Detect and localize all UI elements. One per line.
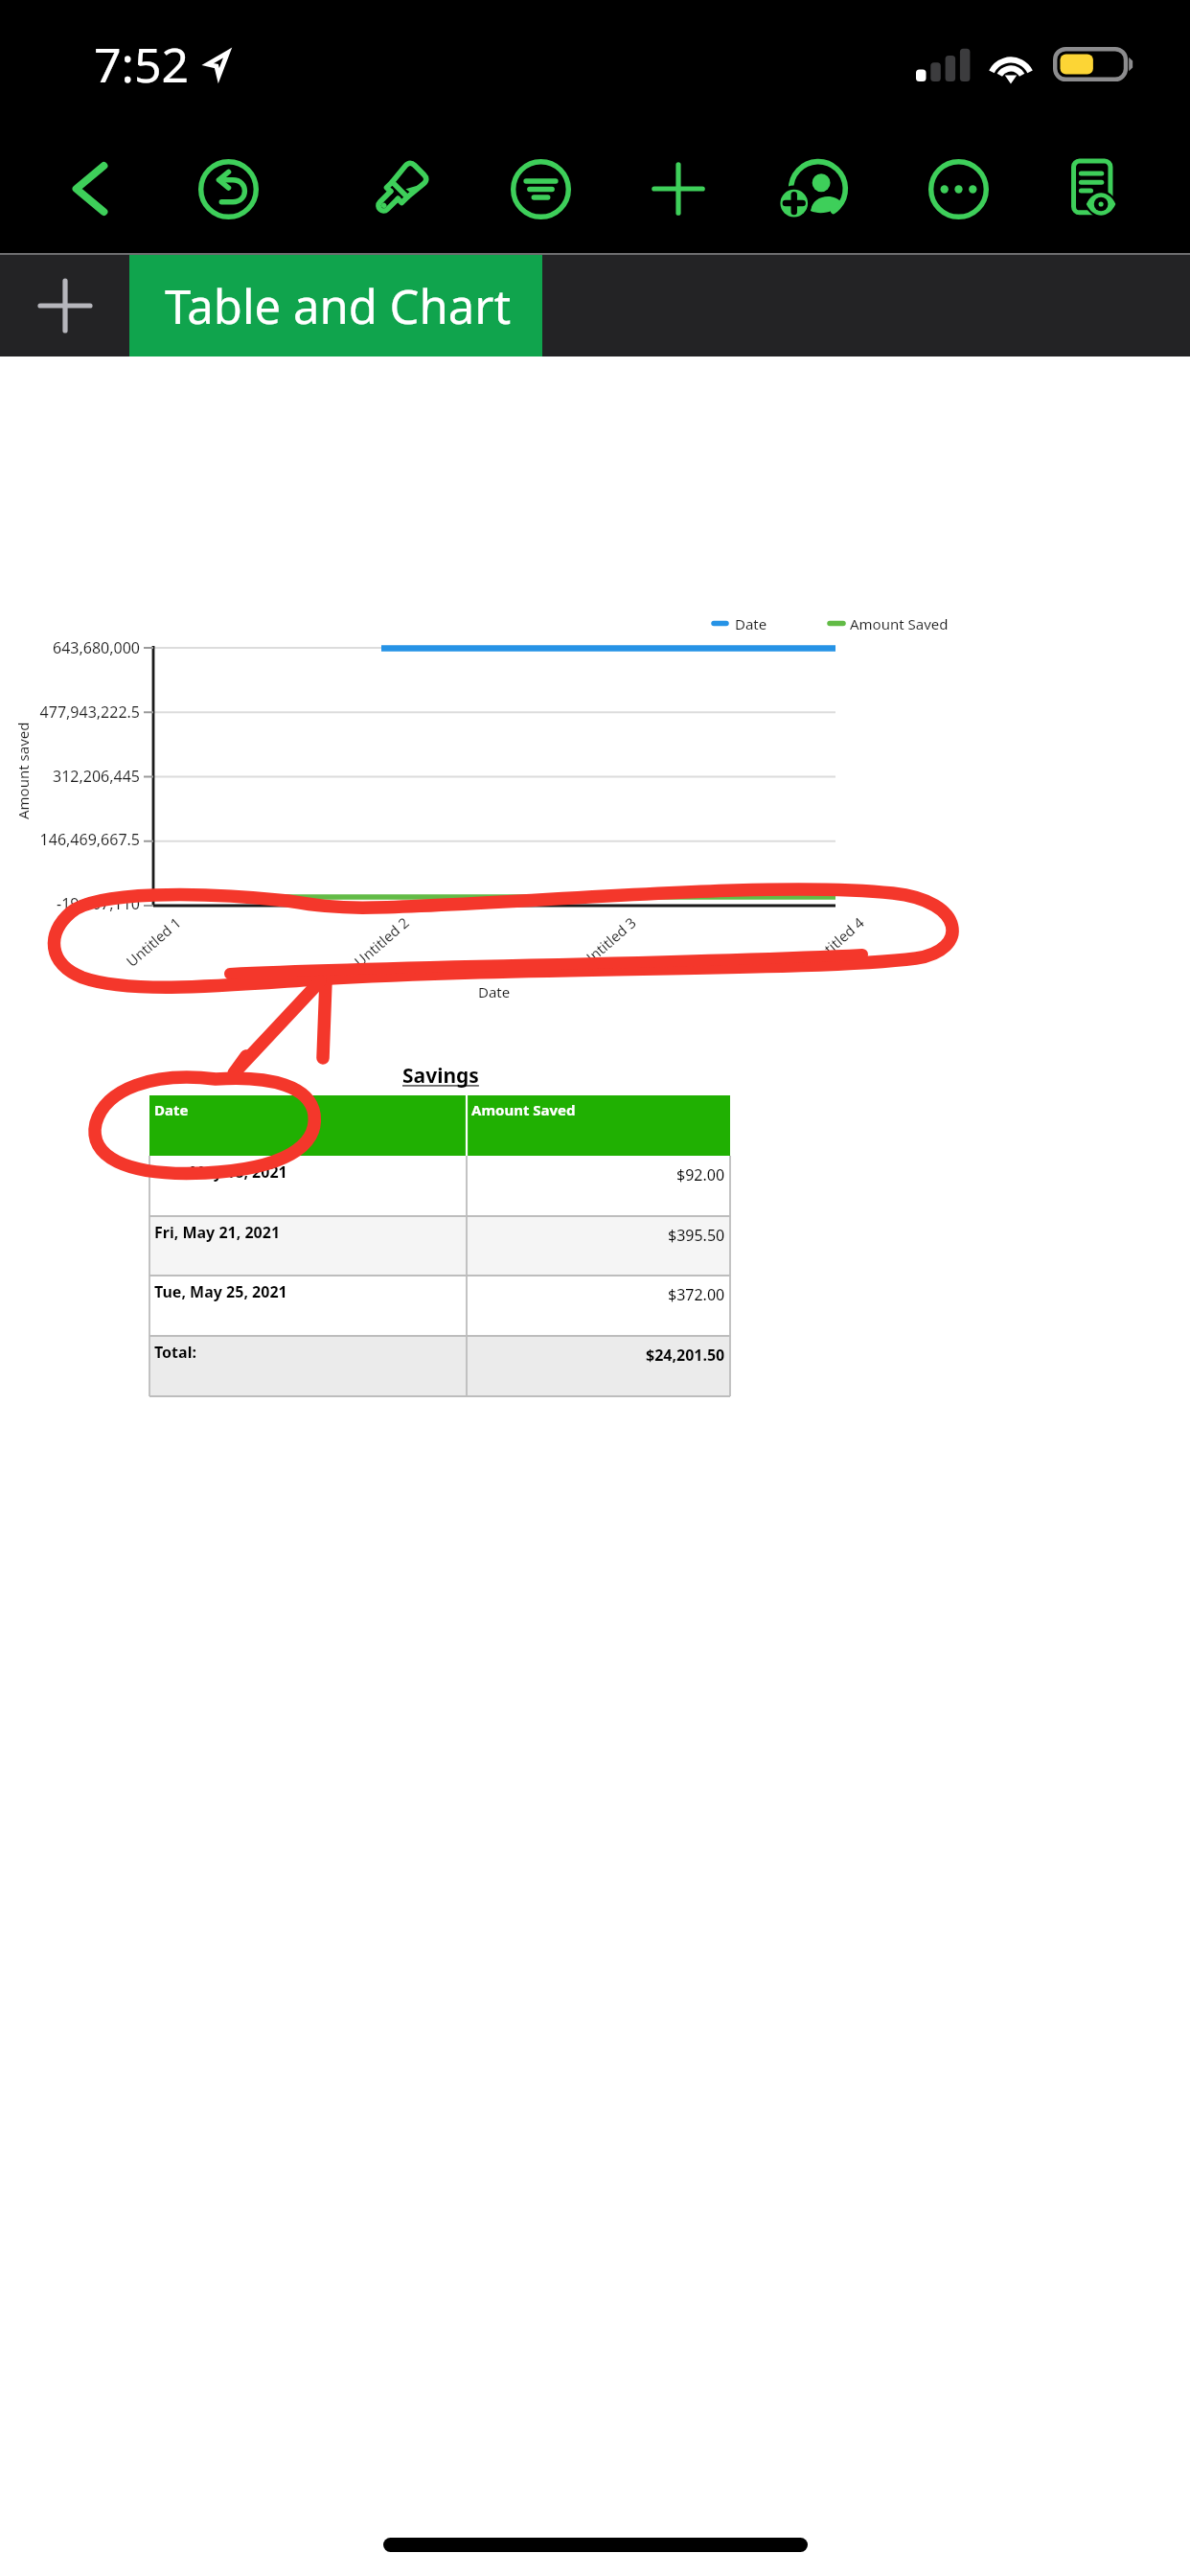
- button[interactable]: Undo: [174, 135, 282, 242]
- button[interactable]: Total $24,201.50: [149, 1336, 730, 1396]
- staticText: Total:: [154, 1342, 196, 1363]
- button[interactable]: Date column header: [149, 1095, 730, 1156]
- staticText: Table and Chart: [165, 274, 512, 338]
- button[interactable]: Back: [36, 135, 144, 242]
- staticText: Tue, May 25, 2021: [154, 1281, 287, 1302]
- staticText: $395.50: [668, 1225, 725, 1246]
- staticText: 312,206,445: [53, 766, 140, 787]
- button[interactable]: Tue, May 18, 2021 $92.00: [149, 1156, 730, 1216]
- staticText: Untitled 4: [805, 913, 868, 971]
- staticText: Amount Saved: [471, 1100, 576, 1119]
- staticText: Amount Saved: [850, 614, 949, 633]
- staticText: Savings: [402, 1062, 479, 1090]
- button[interactable]: Sort and filter: [487, 135, 594, 242]
- staticText: Tue, May 18, 2021: [154, 1161, 287, 1183]
- staticText: 7:52: [94, 32, 190, 97]
- button[interactable]: Tue, May 25, 2021 $372.00: [149, 1276, 730, 1336]
- staticText: 477,943,222.5: [39, 701, 140, 723]
- staticText: $24,201.50: [646, 1345, 725, 1366]
- button[interactable]: Share and collaborate: [759, 135, 866, 242]
- button[interactable]: Preview document: [1042, 135, 1150, 242]
- staticText: 643,680,000: [53, 637, 140, 658]
- staticText: Date: [478, 982, 511, 1001]
- staticText: Fri, May 21, 2021: [154, 1222, 281, 1243]
- staticText: $372.00: [668, 1284, 725, 1305]
- staticText: Untitled 2: [350, 913, 413, 971]
- button[interactable]: Format: [347, 135, 454, 242]
- staticText: -19,267,110: [57, 893, 140, 914]
- button[interactable]: Amount saved by date chart: [10, 594, 968, 1006]
- staticText: $92.00: [676, 1164, 725, 1185]
- staticText: Date: [735, 614, 767, 633]
- button[interactable]: Table and Chart: [129, 255, 542, 356]
- button[interactable]: Insert: [625, 135, 732, 242]
- staticText: Date: [154, 1100, 189, 1119]
- staticText: Untitled 3: [577, 913, 640, 971]
- staticText: Amount saved: [13, 722, 33, 819]
- staticText: 146,469,667.5: [39, 829, 140, 850]
- button[interactable]: Fri, May 21, 2021 $395.50: [149, 1216, 730, 1276]
- button[interactable]: Add sheet: [0, 255, 129, 356]
- button[interactable]: More options: [904, 135, 1012, 242]
- staticText: Untitled 1: [122, 913, 185, 971]
